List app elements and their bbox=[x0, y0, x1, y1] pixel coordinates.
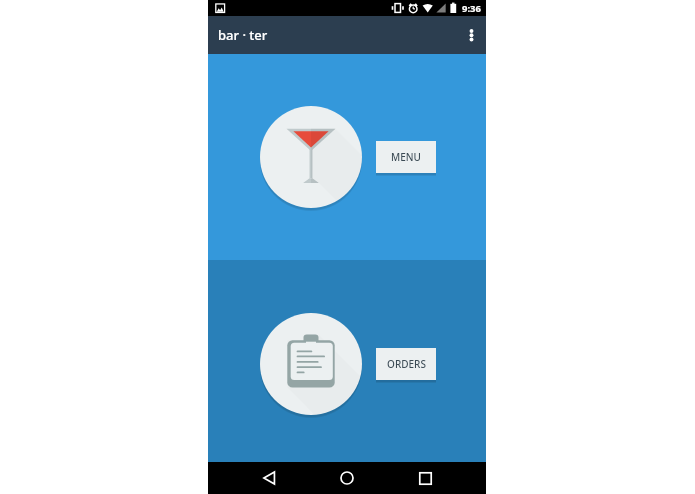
staticText: 9:36 bbox=[462, 2, 481, 15]
button[interactable]: ORDERS bbox=[260, 313, 362, 415]
button[interactable]: Home bbox=[325, 462, 369, 494]
button[interactable]: MENU bbox=[260, 106, 362, 208]
staticText: MENU bbox=[391, 150, 421, 164]
button[interactable]: More options bbox=[456, 16, 486, 54]
staticText: ORDERS bbox=[387, 357, 426, 371]
button[interactable]: MENU bbox=[376, 141, 436, 173]
button[interactable]: Recents bbox=[403, 462, 447, 494]
staticText: bar · ter bbox=[218, 26, 268, 44]
button[interactable]: ORDERS bbox=[376, 348, 436, 380]
button[interactable]: Back bbox=[247, 462, 291, 494]
